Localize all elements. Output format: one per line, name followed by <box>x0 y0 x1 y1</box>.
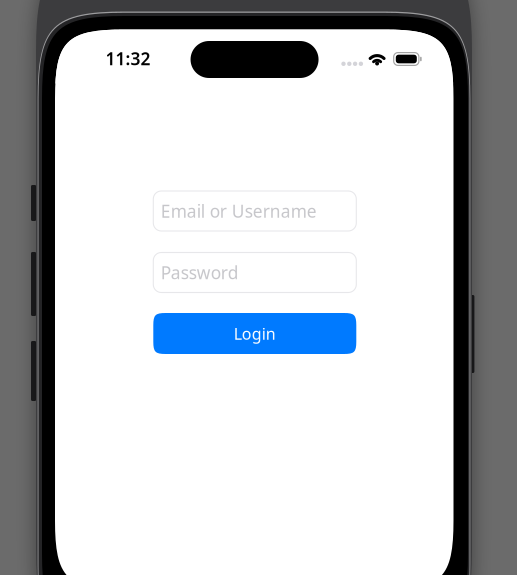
button[interactable]: Password <box>153 252 356 292</box>
staticText: 11:32 <box>105 47 150 70</box>
staticText: Login <box>234 323 276 344</box>
staticText: Password <box>161 261 239 284</box>
button[interactable]: Login <box>153 313 356 354</box>
staticText: Email or Username <box>161 199 317 222</box>
button[interactable]: Email or Username <box>153 191 356 231</box>
